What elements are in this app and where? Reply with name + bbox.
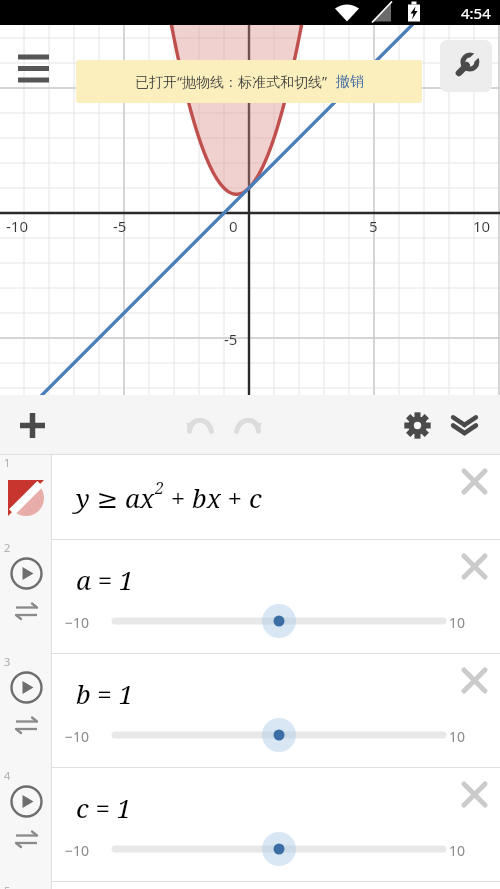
staticText: 10	[449, 841, 466, 860]
staticText: 2	[155, 477, 164, 499]
staticText: 撤销	[336, 73, 364, 91]
staticText: -5	[113, 216, 127, 236]
button[interactable]: Toggle graph	[0, 455, 52, 540]
button[interactable]: Tools	[440, 40, 492, 92]
staticText: + bx + c	[164, 480, 262, 515]
button[interactable]: Settings	[395, 395, 439, 455]
staticText: -5	[224, 329, 238, 349]
staticText: a = 1	[76, 562, 134, 597]
button[interactable]: c slider	[52, 836, 500, 866]
staticText: −10	[65, 613, 90, 632]
button[interactable]: Delete	[452, 658, 496, 702]
button[interactable]: Play animation	[10, 785, 43, 818]
button[interactable]: Reverse direction	[12, 597, 40, 625]
staticText: 2	[4, 540, 11, 555]
staticText: c = 1	[76, 790, 132, 825]
button[interactable]: b slider	[52, 722, 500, 752]
button[interactable]: Collapse list	[441, 395, 487, 455]
staticText: 10	[473, 216, 491, 236]
button[interactable]: Reverse direction	[12, 711, 40, 739]
button[interactable]: Undo	[177, 395, 223, 455]
staticText: 4	[4, 768, 11, 783]
button[interactable]: 撤销	[336, 73, 364, 91]
staticText: 0	[229, 216, 238, 236]
staticText: 10	[449, 613, 466, 632]
staticText: y ≥ ax	[76, 480, 155, 515]
staticText: 5	[4, 883, 11, 889]
staticText: −10	[65, 727, 90, 746]
button[interactable]: Redo	[225, 395, 271, 455]
staticText: 5	[231, 80, 240, 100]
staticText: -10	[6, 216, 28, 236]
staticText: 3	[4, 654, 11, 669]
button[interactable]: Add expression	[9, 395, 55, 455]
staticText: 5	[369, 216, 378, 236]
button[interactable]: Reverse direction	[12, 825, 40, 853]
button[interactable]: Menu	[6, 41, 60, 95]
staticText: 4:54	[461, 3, 491, 23]
staticText: −10	[65, 841, 90, 860]
button[interactable]: Delete	[452, 772, 496, 816]
button[interactable]: Delete	[452, 459, 496, 503]
button[interactable]: Delete	[452, 544, 496, 588]
button[interactable]: a slider	[52, 608, 500, 638]
staticText: b = 1	[76, 676, 134, 711]
staticText: 已打开“抛物线：标准式和切线”	[135, 72, 328, 91]
button[interactable]: Play animation	[10, 557, 43, 590]
button[interactable]: Play animation	[10, 671, 43, 704]
staticText: 1	[4, 455, 11, 470]
staticText: 10	[449, 727, 466, 746]
